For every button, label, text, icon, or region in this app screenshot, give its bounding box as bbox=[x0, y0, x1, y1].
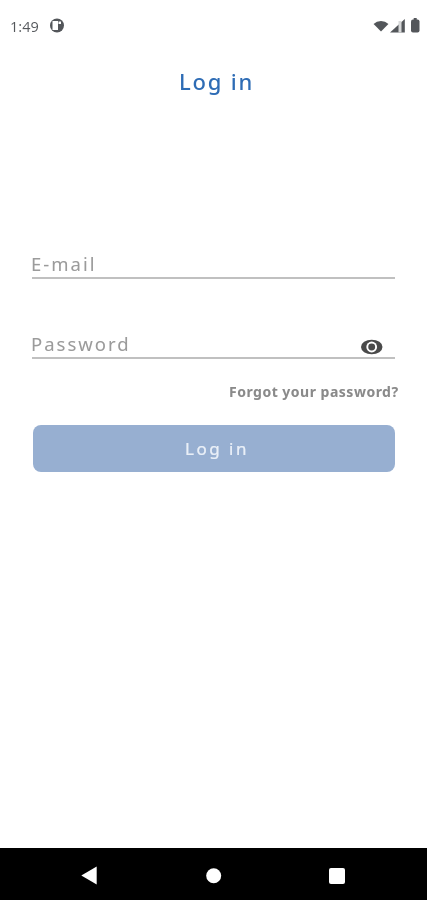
button[interactable] bbox=[190, 848, 238, 900]
button[interactable] bbox=[65, 848, 113, 900]
staticText: E-mail bbox=[31, 251, 97, 276]
button[interactable]: Log in bbox=[33, 425, 395, 472]
button[interactable] bbox=[313, 848, 361, 900]
button[interactable]: Password bbox=[32, 328, 395, 359]
staticText: Forgot your password? bbox=[229, 382, 399, 401]
staticText: Log in bbox=[179, 66, 255, 96]
staticText: 1:49 bbox=[10, 16, 39, 36]
button[interactable]: E-mail bbox=[32, 248, 395, 279]
staticText: Password bbox=[31, 331, 131, 356]
button[interactable]: Forgot your password? bbox=[229, 382, 399, 401]
staticText: Log in bbox=[185, 437, 249, 460]
